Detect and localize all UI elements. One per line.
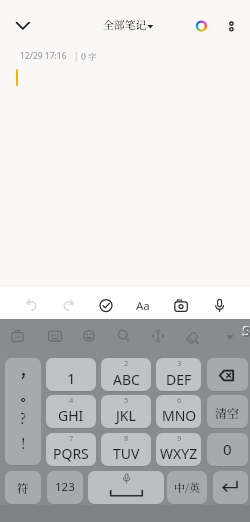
staticText: 0 字: [81, 50, 97, 62]
staticText: ABC: [113, 370, 140, 389]
button[interactable]: [207, 358, 248, 391]
staticText: 8: [124, 433, 129, 443]
button[interactable]: [207, 433, 248, 466]
button[interactable]: [156, 395, 201, 428]
staticText: 2: [124, 358, 129, 368]
button[interactable]: [146, 324, 170, 348]
staticText: 6: [177, 395, 182, 405]
button[interactable]: [47, 471, 83, 504]
staticText: 符: [17, 479, 30, 496]
button[interactable]: [101, 395, 151, 428]
staticText: S: [243, 321, 250, 341]
button[interactable]: [43, 324, 67, 348]
staticText: GHI: [58, 406, 84, 425]
button[interactable]: [10, 11, 38, 39]
button[interactable]: [18, 292, 44, 318]
staticText: 1: [67, 368, 76, 388]
button[interactable]: [218, 326, 240, 348]
button[interactable]: [130, 292, 156, 318]
button[interactable]: [207, 395, 248, 428]
button[interactable]: [88, 471, 164, 504]
staticText: 123: [55, 479, 75, 495]
button[interactable]: [46, 358, 96, 391]
staticText: 9: [177, 433, 182, 443]
staticText: MNO: [162, 406, 197, 425]
button[interactable]: [93, 292, 119, 318]
staticText: 中/英: [174, 479, 200, 495]
staticText: 清空: [215, 404, 240, 421]
staticText: Aa: [136, 298, 150, 314]
button[interactable]: [77, 324, 101, 348]
button[interactable]: [101, 433, 151, 466]
staticText: ?: [20, 408, 27, 428]
staticText: !: [21, 433, 26, 453]
button[interactable]: [188, 13, 215, 39]
staticText: 0: [223, 439, 232, 459]
button[interactable]: [5, 471, 41, 504]
button[interactable]: [5, 358, 41, 465]
staticText: TUV: [113, 444, 140, 463]
button[interactable]: [206, 292, 232, 318]
button[interactable]: [46, 433, 96, 466]
staticText: DEF: [166, 370, 192, 389]
staticText: WXYZ: [160, 444, 198, 463]
staticText: S: [242, 320, 250, 340]
button[interactable]: [156, 433, 201, 466]
staticText: PQRS: [53, 444, 89, 463]
button[interactable]: [46, 395, 96, 428]
staticText: 5: [124, 395, 129, 405]
button[interactable]: [181, 324, 205, 348]
button[interactable]: [56, 292, 82, 318]
button[interactable]: [101, 358, 151, 391]
button[interactable]: [168, 292, 194, 318]
staticText: |: [74, 50, 79, 61]
staticText: 3: [177, 358, 182, 368]
button[interactable]: [213, 471, 248, 504]
staticText: 4: [69, 395, 74, 405]
staticText: 7: [69, 433, 74, 443]
staticText: 12/29 17:16: [20, 50, 67, 62]
button[interactable]: [111, 324, 135, 348]
button[interactable]: [156, 358, 201, 391]
button[interactable]: [220, 12, 244, 40]
button[interactable]: [6, 324, 30, 348]
button[interactable]: [167, 471, 207, 504]
staticText: JKL: [116, 406, 136, 425]
staticText: 全部笔记: [103, 17, 147, 33]
button[interactable]: [100, 12, 160, 38]
